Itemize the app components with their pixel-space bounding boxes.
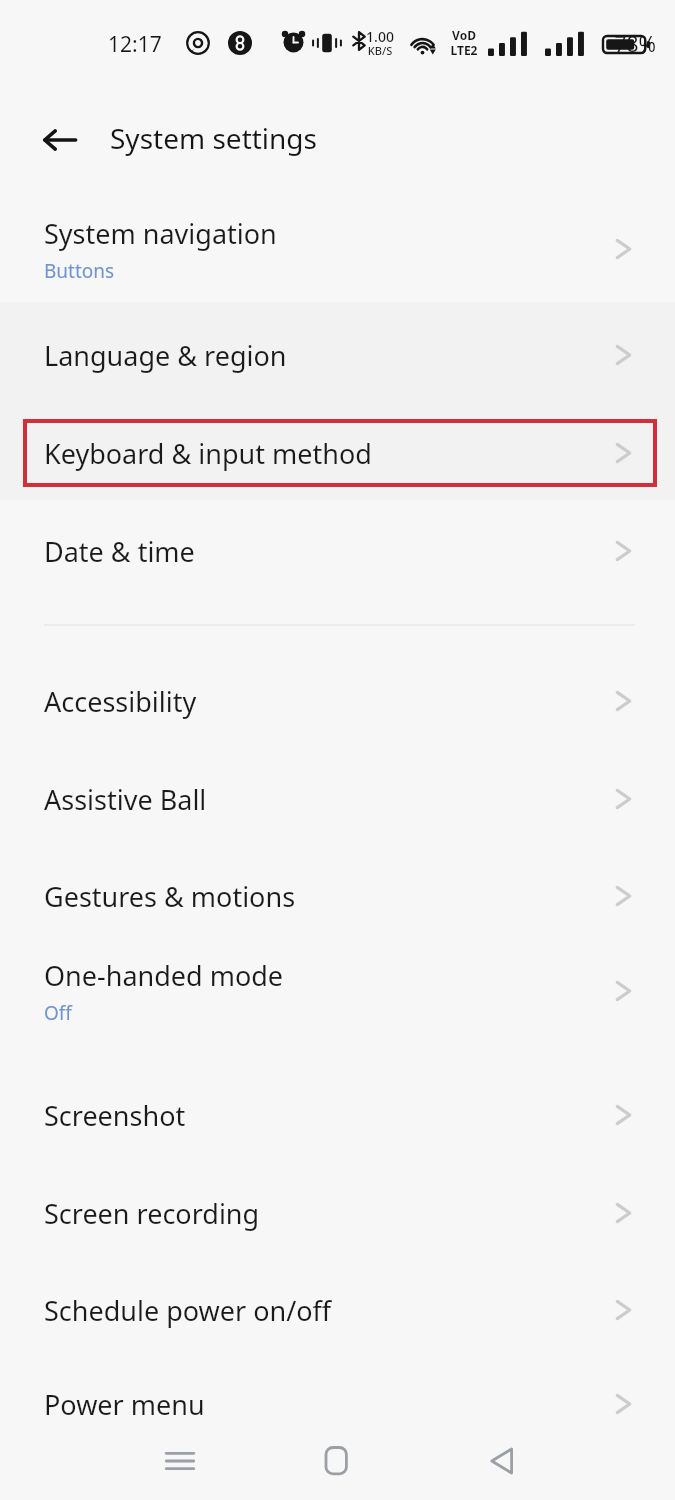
staticText: Buttons: [44, 258, 115, 284]
button[interactable]: Home: [298, 1422, 378, 1500]
button[interactable]: One-handed mode: [0, 938, 675, 1044]
staticText: Keyboard & input method: [44, 435, 372, 472]
button[interactable]: Assistive Ball: [0, 750, 675, 848]
button[interactable]: Gestures & motions: [0, 847, 675, 945]
staticText: Off: [44, 1000, 72, 1026]
button[interactable]: Schedule power on/off: [0, 1261, 675, 1359]
staticText: 78%: [566, 30, 656, 59]
staticText: 12:17: [108, 30, 162, 59]
staticText: 1.00: [356, 27, 404, 46]
button[interactable]: System navigation: [0, 196, 675, 302]
button[interactable]: Accessibility: [0, 652, 675, 750]
staticText: Screenshot: [44, 1097, 186, 1134]
button[interactable]: Power menu: [0, 1355, 675, 1453]
button[interactable]: Keyboard & input method: [0, 404, 675, 502]
staticText: Screen recording: [44, 1195, 260, 1232]
staticText: VoD: [444, 27, 484, 43]
staticText: Assistive Ball: [44, 781, 207, 818]
staticText: LTE2: [444, 42, 484, 58]
staticText: Accessibility: [44, 683, 197, 720]
staticText: Date & time: [44, 533, 195, 570]
staticText: Language & region: [44, 337, 287, 374]
button[interactable]: Recent apps: [140, 1422, 220, 1500]
button[interactable]: Date & time: [0, 502, 675, 600]
staticText: KB/S: [356, 43, 404, 58]
button[interactable]: Screenshot: [0, 1066, 675, 1164]
button[interactable]: Screen recording: [0, 1164, 675, 1262]
staticText: Power menu: [44, 1386, 205, 1423]
button[interactable]: Back: [462, 1422, 542, 1500]
staticText: Gestures & motions: [44, 878, 296, 915]
staticText: System navigation: [44, 215, 277, 252]
staticText: One-handed mode: [44, 957, 284, 994]
button[interactable]: Back: [28, 108, 92, 172]
staticText: Schedule power on/off: [44, 1292, 332, 1329]
button[interactable]: Language & region: [0, 306, 675, 404]
staticText: System settings: [110, 119, 318, 157]
